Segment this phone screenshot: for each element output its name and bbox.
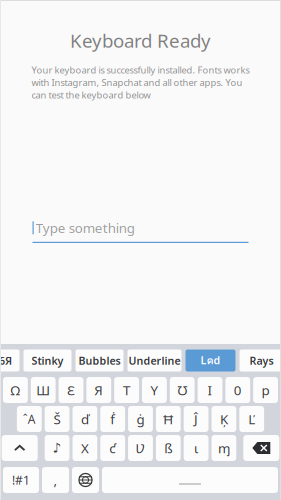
button[interactable]: Š — [45, 406, 69, 432]
button[interactable]: Underline — [127, 349, 181, 371]
button[interactable]: p — [253, 377, 278, 403]
staticText: Ĵ — [194, 410, 198, 428]
button[interactable]: Ķ — [211, 406, 236, 432]
button[interactable]: Ľ — [239, 406, 264, 432]
button[interactable]: Lคd๡ — [185, 349, 235, 371]
staticText: ♪ — [53, 440, 62, 455]
staticText: Ω — [10, 381, 20, 399]
staticText: Lคd๡ — [200, 352, 220, 369]
button[interactable]: ЛЛ6Я — [0, 349, 19, 371]
staticText: Underline — [128, 353, 180, 368]
button[interactable]: ß — [156, 435, 181, 461]
button[interactable]: ḟ — [100, 406, 125, 432]
button[interactable]: 0 — [225, 377, 250, 403]
button[interactable]: ď — [72, 406, 97, 432]
staticText: T — [123, 381, 130, 399]
staticText: Stinky — [31, 353, 63, 368]
staticText: Y — [150, 381, 158, 399]
button[interactable]: Bubbles — [75, 349, 123, 371]
button[interactable]: Next keyboard — [72, 467, 99, 493]
button[interactable]: Rays — [239, 349, 281, 371]
button[interactable]: , — [42, 467, 69, 493]
button[interactable]: Delete — [243, 435, 279, 461]
staticText: Bubbles — [78, 353, 120, 368]
button[interactable]: ƈ — [100, 435, 125, 461]
staticText: ƈ — [109, 439, 116, 457]
staticText: Ľ — [248, 410, 255, 428]
button[interactable]: Ш — [31, 377, 56, 403]
staticText: p — [262, 381, 270, 399]
staticText: ˆA — [23, 411, 36, 427]
staticText: Ʋ — [135, 439, 145, 457]
staticText: Keyboard Ready — [70, 28, 211, 53]
button[interactable]: Ɛ — [59, 377, 83, 403]
staticText: ЛЛ6Я — [0, 353, 12, 368]
staticText: Ɛ — [67, 381, 75, 399]
staticText: ď — [81, 410, 89, 428]
button[interactable]: X — [72, 435, 97, 461]
button[interactable]: Ʋ — [128, 435, 153, 461]
staticText: ḟ — [110, 410, 115, 428]
staticText: ɱ — [218, 439, 230, 457]
button[interactable]: !#1 — [3, 467, 39, 493]
staticText: ġ — [136, 410, 144, 428]
staticText: ɩ — [194, 439, 198, 457]
staticText: 0 — [234, 381, 242, 399]
staticText: , — [53, 471, 57, 489]
staticText: !#1 — [12, 472, 30, 488]
staticText: Type something — [36, 219, 135, 237]
staticText: Your keyboard is successfully installed.… — [31, 64, 249, 101]
button[interactable]: ġ — [128, 406, 153, 432]
staticText: ß — [164, 439, 172, 457]
staticText: Ķ — [220, 410, 228, 428]
staticText: Rays — [249, 353, 273, 368]
button[interactable]: Я — [86, 377, 111, 403]
button[interactable]: Ω — [3, 377, 28, 403]
button[interactable]: Stinky — [23, 349, 71, 371]
button[interactable]: ɱ — [211, 435, 236, 461]
button[interactable]: Ħ — [156, 406, 181, 432]
staticText: X — [81, 439, 89, 457]
staticText: I — [207, 381, 212, 399]
button[interactable]: Y — [142, 377, 167, 403]
button[interactable]: Shift — [2, 435, 38, 461]
button[interactable]: ˆA — [17, 406, 42, 432]
staticText: Š — [54, 410, 61, 428]
button[interactable]: Ʊ — [170, 377, 195, 403]
button[interactable]: I — [198, 377, 222, 403]
button[interactable]: T — [114, 377, 139, 403]
staticText: Ħ — [163, 410, 173, 428]
staticText: Ʊ — [177, 381, 187, 399]
button[interactable]: ♪ — [45, 435, 69, 461]
button[interactable]: Ĵ — [184, 406, 208, 432]
staticText: Ш — [36, 381, 50, 399]
staticText: Я — [94, 381, 103, 399]
button[interactable]: space — [102, 467, 278, 493]
button[interactable]: ɩ — [184, 435, 208, 461]
